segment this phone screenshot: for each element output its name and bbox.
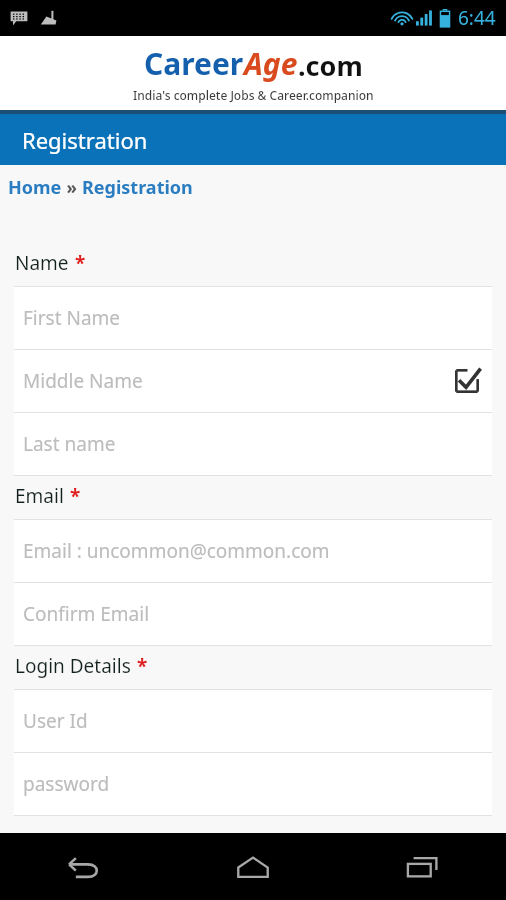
staticText: Name (15, 250, 69, 276)
button[interactable]: password (14, 753, 492, 815)
button[interactable]: User Id (14, 690, 492, 752)
button[interactable]: Recent apps (337, 833, 506, 900)
button[interactable]: Checked (452, 366, 482, 396)
staticText: * (75, 250, 86, 276)
staticText: .com (298, 47, 363, 84)
staticText: Registration (22, 125, 148, 155)
button[interactable]: Home (8, 175, 62, 200)
staticText: Email (15, 483, 64, 509)
staticText: password (23, 771, 110, 797)
staticText: * (137, 653, 148, 679)
staticText: India's complete Jobs & Career.companion (133, 87, 374, 103)
button[interactable]: Confirm Email (14, 583, 492, 645)
button[interactable]: Home (168, 833, 337, 900)
button[interactable]: Email : uncommon@common.com (14, 520, 492, 582)
staticText: Confirm Email (23, 601, 150, 627)
staticText: Last name (23, 431, 116, 457)
button[interactable]: Last name (14, 413, 492, 475)
button[interactable]: Middle Name (14, 350, 492, 412)
button[interactable]: First Name (14, 287, 492, 349)
staticText: Email : uncommon@common.com (23, 538, 330, 564)
staticText: 6:44 (458, 5, 496, 31)
button[interactable]: Back (0, 833, 168, 900)
staticText: Age (244, 43, 298, 84)
staticText: User Id (23, 708, 88, 734)
staticText: Login Details (15, 653, 131, 679)
staticText: * (70, 483, 81, 509)
button[interactable]: Registration (82, 175, 193, 200)
staticText: First Name (23, 305, 121, 331)
staticText: » (62, 176, 82, 199)
staticText: Career (144, 43, 244, 84)
staticText: Middle Name (23, 368, 143, 394)
